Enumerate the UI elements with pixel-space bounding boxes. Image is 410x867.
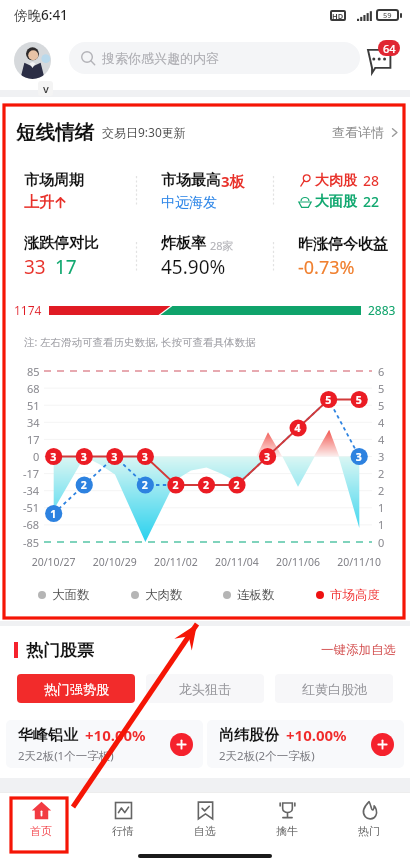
staticText: 首页 [30,824,52,838]
staticText: 傍晚6:41 [14,6,68,24]
staticText: 市场最高 [161,171,221,190]
staticText: 2天2板(1个一字板) [18,748,114,764]
button[interactable]: 短线情绪 [0,97,410,158]
staticText: 红黄白股池 [302,681,367,697]
button[interactable]: 市场最高 [137,158,273,224]
staticText: V [43,83,49,95]
staticText: 热门 [358,824,380,838]
staticText: 33 [24,254,46,280]
button[interactable]: 行情 [82,793,164,845]
button[interactable]: 红黄白股池 [275,674,393,703]
button[interactable]: 龙头狙击 [146,674,264,703]
staticText: 自选 [194,824,216,838]
staticText: 59 [383,10,392,20]
staticText: 大面股 [315,193,357,211]
staticText: 龙头狙击 [179,681,231,697]
staticText: 3板 [221,171,245,191]
staticText: 大肉数 [145,587,183,603]
button[interactable]: 市场周期 [0,158,136,224]
button[interactable]: 热门强势股 [17,674,135,703]
staticText: 市场周期 [24,171,84,190]
button[interactable]: 大面数 [38,587,90,603]
staticText: 涨跌停对比 [24,234,99,253]
staticText: 64 [383,41,396,56]
staticText: 注: 左右滑动可查看历史数据, 长按可查看具体数据 [24,335,256,349]
staticText: 昨涨停今收益 [298,235,388,254]
staticText: 华峰铝业 [18,726,78,745]
button[interactable]: Add to watchlist [170,733,193,756]
button[interactable]: 擒牛 [246,793,328,845]
staticText: 大面数 [52,587,90,603]
button[interactable]: 首页 [0,793,82,845]
staticText: 1174 [14,302,42,318]
button[interactable]: Add to watchlist [371,733,394,756]
button[interactable]: Profile [14,42,51,79]
staticText: 连板数 [237,587,275,603]
button[interactable]: 搜索你感兴趣的内容 [69,42,360,74]
staticText: 2天2板(2个一字板) [219,748,315,764]
staticText: 热门强势股 [44,681,109,697]
staticText: 市场高度 [330,587,380,603]
button[interactable]: 一键添加自选 [321,642,396,658]
staticText: 2883 [368,302,396,318]
button[interactable]: 连板数 [223,587,275,603]
button[interactable]: 热门 [328,793,410,845]
button[interactable]: 华峰铝业 [6,720,203,768]
staticText: 炸板率 [161,234,206,253]
staticText: +10.00% [286,725,347,745]
button[interactable]: 涨跌停对比 [0,224,136,290]
button[interactable]: 市场高度 [316,587,380,603]
staticText: 17 [55,254,77,280]
button[interactable]: 大肉数 [131,587,183,603]
button[interactable]: 尚纬股份 [207,720,404,768]
staticText: 短线情绪 [16,120,94,145]
button[interactable]: 大肉股 [274,158,410,224]
staticText: 擒牛 [276,824,298,838]
staticText: 行情 [112,824,134,838]
staticText: 22 [363,192,380,211]
staticText: 28家 [210,238,234,253]
staticText: -0.73% [298,255,355,280]
button[interactable]: 炸板率 [137,224,273,290]
staticText: 大肉股 [315,172,357,190]
staticText: 交易日9:30更新 [102,124,186,140]
staticText: HD [332,11,344,21]
staticText: +10.00% [85,725,146,745]
button[interactable]: Messages [364,42,404,78]
staticText: 45.90% [161,254,226,280]
staticText: 热门股票 [26,640,94,661]
staticText: 中远海发 [161,194,217,212]
staticText: 尚纬股份 [219,726,279,745]
staticText: 查看详情 [332,124,384,140]
staticText: 上升 [24,193,54,212]
button[interactable]: 自选 [164,793,246,845]
staticText: 搜索你感兴趣的内容 [102,50,219,66]
button[interactable]: 昨涨停今收益 [274,224,410,290]
staticText: 28 [363,171,380,190]
